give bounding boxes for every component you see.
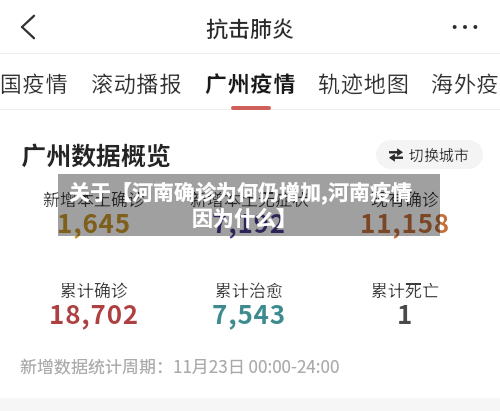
- staticText: 现有确诊: [371, 186, 439, 211]
- staticText: 11,158: [360, 203, 450, 241]
- button[interactable]: 滚动播报: [82, 54, 192, 110]
- staticText: 18,702: [49, 294, 139, 332]
- staticText: 累计治愈: [215, 277, 283, 302]
- button[interactable]: 广州疫情: [196, 54, 306, 110]
- staticText: 累计死亡: [371, 277, 439, 302]
- staticText: 关于【河南确诊为何仍增加,河南疫情: [69, 176, 412, 206]
- button[interactable]: 海外疫情: [422, 54, 500, 110]
- staticText: 7,543: [212, 294, 286, 332]
- staticText: 全国疫情: [0, 66, 69, 98]
- staticText: 新增本土无症状: [190, 186, 309, 211]
- staticText: 新增本土确诊: [43, 186, 145, 211]
- staticText: 抗击肺炎: [206, 11, 295, 43]
- staticText: 累计确诊: [60, 277, 128, 302]
- button[interactable]: More options: [447, 9, 483, 45]
- button[interactable]: 切换城市: [376, 140, 483, 169]
- staticText: 轨迹地图: [318, 66, 410, 98]
- staticText: 广州疫情: [205, 66, 297, 98]
- staticText: 1: [397, 294, 414, 332]
- button[interactable]: 全国疫情: [0, 54, 78, 110]
- button[interactable]: Back: [8, 7, 48, 47]
- button[interactable]: 轨迹地图: [309, 54, 419, 110]
- staticText: 7,192: [212, 203, 286, 241]
- staticText: 海外疫情: [431, 66, 500, 98]
- staticText: 滚动播报: [91, 66, 183, 98]
- staticText: 广州数据概览: [21, 136, 172, 172]
- staticText: 新增数据统计周期：11月23日 00:00-24:00: [20, 353, 340, 378]
- staticText: 1,645: [57, 203, 131, 241]
- staticText: 因为什么】: [192, 202, 297, 232]
- staticText: 切换城市: [409, 144, 470, 166]
